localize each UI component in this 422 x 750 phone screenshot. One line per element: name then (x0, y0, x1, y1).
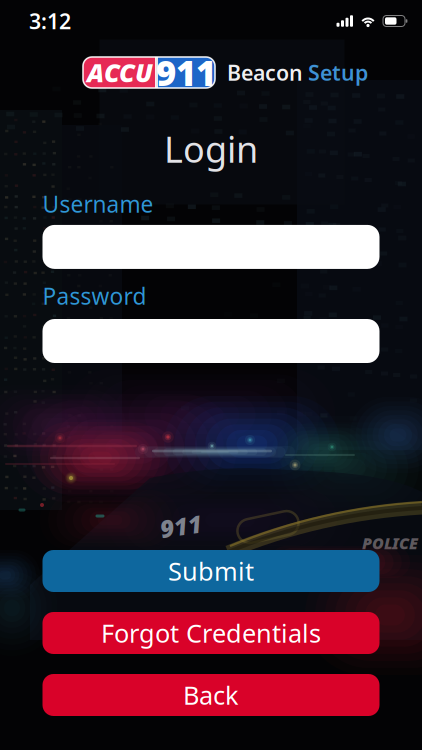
button[interactable]: Forgot Credentials (42, 612, 379, 654)
staticText: Submit (168, 554, 254, 588)
button[interactable]: Password field (42, 319, 379, 363)
staticText: 911 (156, 49, 216, 95)
staticText: 911 (160, 510, 202, 542)
staticText: Back (183, 678, 239, 712)
button[interactable]: Back (42, 674, 379, 716)
button[interactable]: Submit (42, 550, 379, 592)
staticText: Beacon (227, 58, 303, 87)
staticText: Username (42, 189, 153, 219)
staticText: Login (164, 125, 258, 173)
button[interactable]: Username field (42, 225, 379, 269)
staticText: Setup (308, 58, 368, 87)
staticText: Forgot Credentials (101, 616, 321, 650)
staticText: Password (42, 281, 146, 311)
staticText: POLICE (362, 532, 418, 554)
staticText: 3:12 (29, 7, 71, 35)
staticText: ACCU (87, 56, 153, 89)
